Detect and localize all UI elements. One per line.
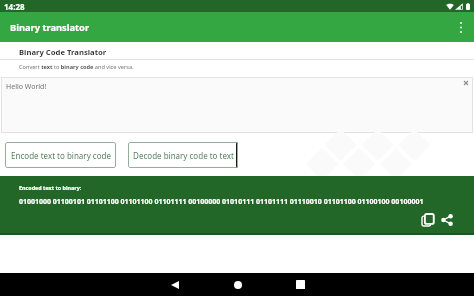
- button[interactable]: Share: [440, 213, 453, 226]
- button[interactable]: More options: [448, 14, 474, 40]
- staticText: Convert text to binary code and vice ver…: [19, 63, 134, 71]
- button[interactable]: Home: [226, 273, 249, 296]
- staticText: 14:28: [4, 1, 25, 12]
- staticText: Encoded text to binary:: [19, 184, 82, 191]
- staticText: 01001000 01100101 01101100 01101100 0110…: [19, 197, 424, 207]
- button[interactable]: Recent apps: [289, 273, 312, 296]
- button[interactable]: Encode text to binary code: [5, 142, 116, 168]
- button[interactable]: Copy: [421, 213, 434, 226]
- button[interactable]: Decode binary code to text: [128, 142, 238, 168]
- button[interactable]: Back: [163, 273, 186, 296]
- staticText: Decode binary code to text: [133, 150, 234, 161]
- staticText: Binary translator: [10, 21, 90, 34]
- button[interactable]: Clear text: [460, 77, 472, 89]
- staticText: Encode text to binary code: [11, 150, 111, 161]
- staticText: Hello World!: [6, 82, 47, 92]
- staticText: Binary Code Translator: [19, 47, 107, 57]
